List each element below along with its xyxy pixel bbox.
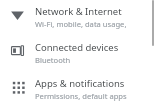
other: Apps and notifications xyxy=(0,77,35,99)
button[interactable]: Network and internet xyxy=(0,5,158,29)
other: Network and internet xyxy=(0,5,35,27)
staticText: Permissions, default apps xyxy=(35,91,127,101)
staticText: Bluetooth xyxy=(35,55,71,65)
staticText: Network & Internet xyxy=(35,5,122,18)
staticText: Wi-Fi, mobile, data usage, hotspot xyxy=(35,19,152,29)
button[interactable]: Connected devices xyxy=(0,41,158,65)
other: Connected devices xyxy=(0,41,35,63)
staticText: Connected devices xyxy=(35,41,119,54)
staticText: Apps & notifications xyxy=(35,77,125,90)
button[interactable]: Apps and notifications xyxy=(0,77,158,101)
